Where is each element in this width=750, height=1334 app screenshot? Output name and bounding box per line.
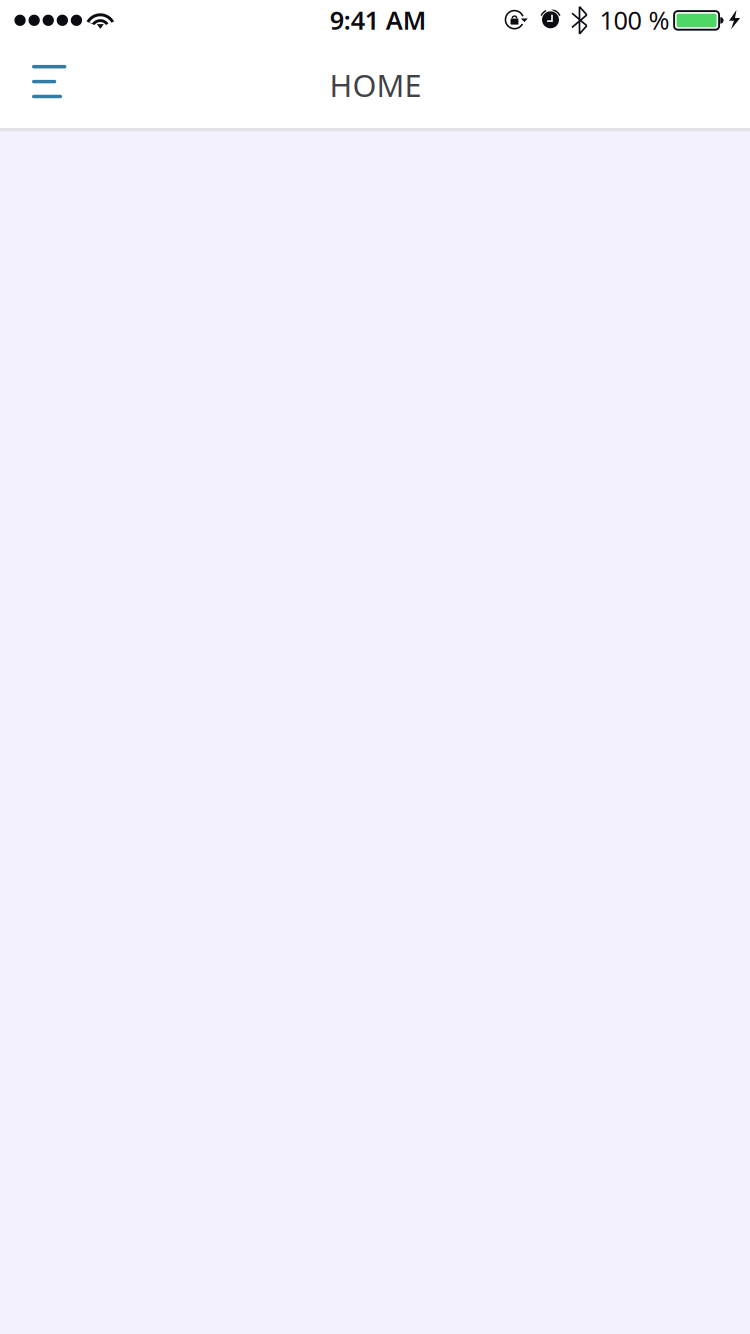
staticText: HOME [329, 65, 421, 105]
staticText: 9:41 AM [330, 3, 427, 37]
staticText: 100 % [599, 3, 669, 37]
button[interactable]: Menu [5, 38, 93, 126]
